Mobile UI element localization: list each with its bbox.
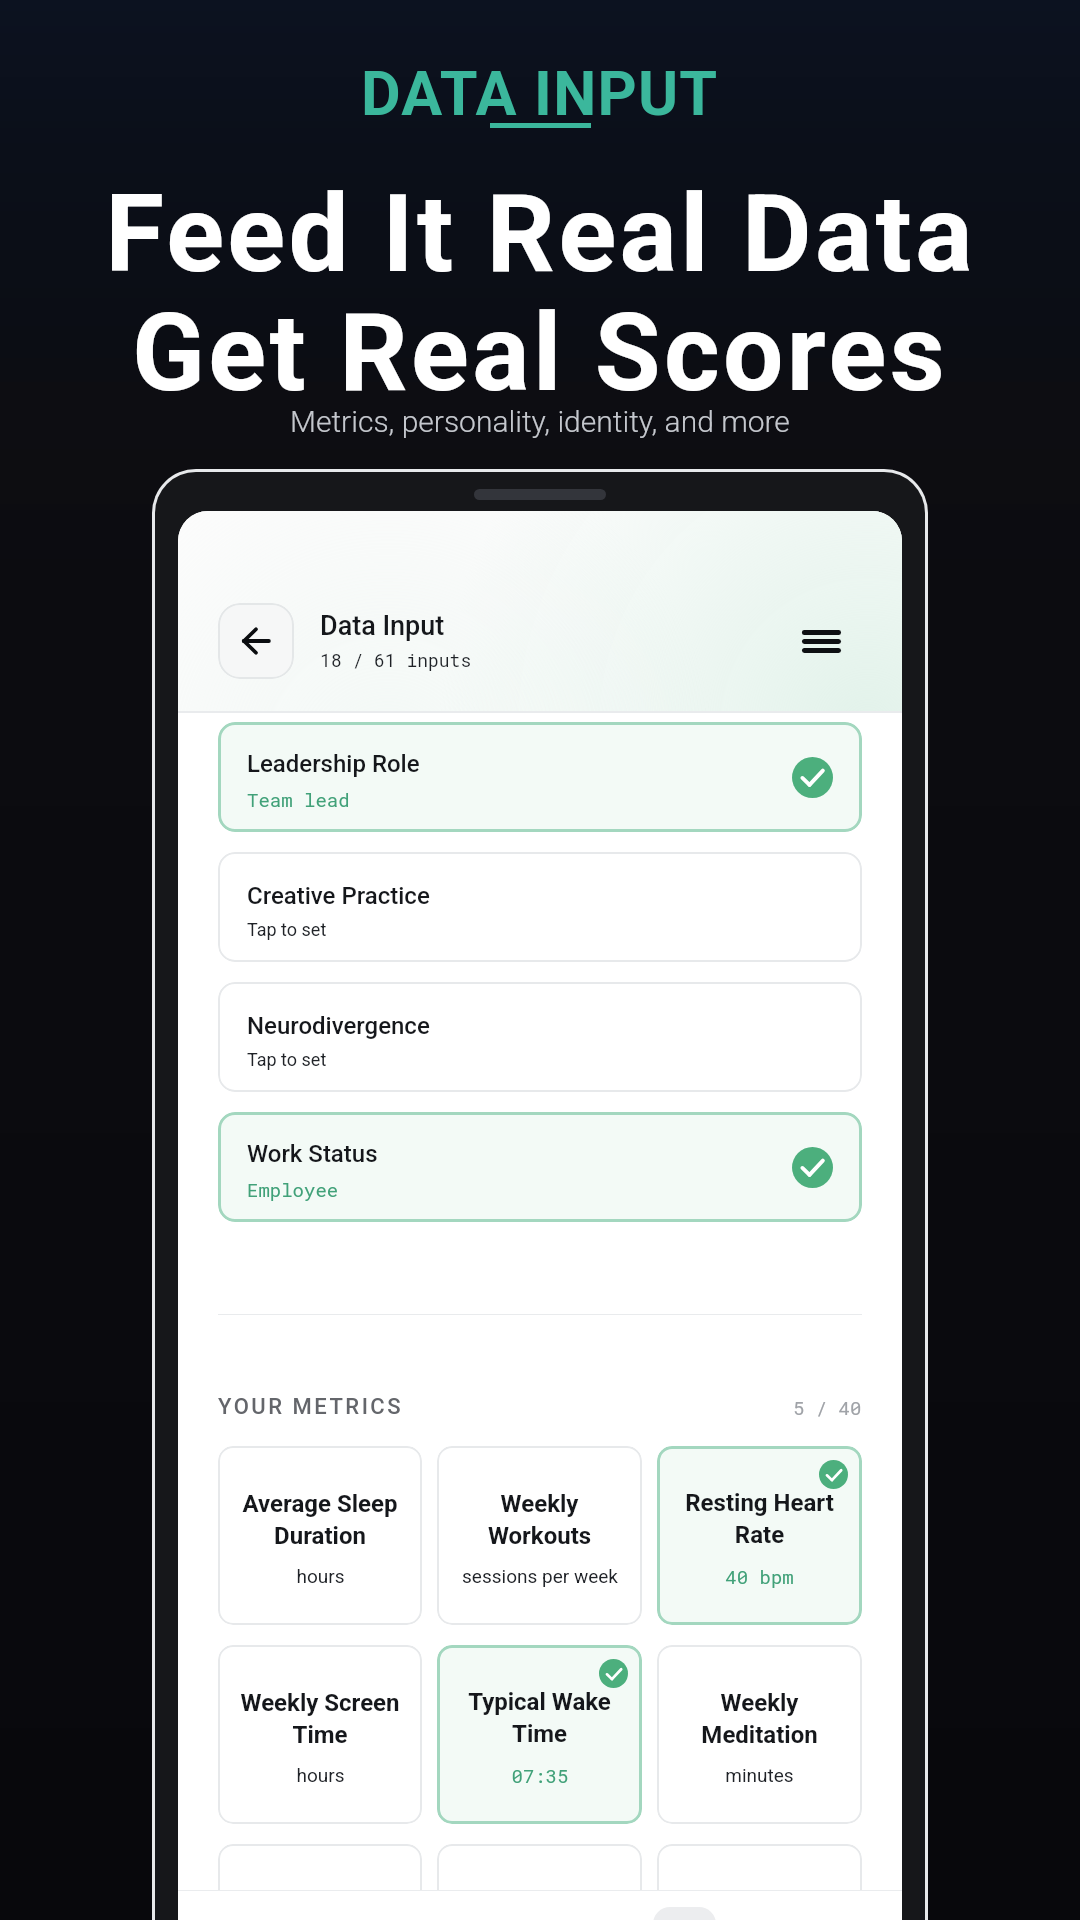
button[interactable]: Profile: [612, 1891, 757, 1920]
button[interactable]: [657, 1844, 862, 1920]
button[interactable]: Back: [218, 603, 294, 679]
staticText: YOUR METRICS: [218, 1394, 404, 1420]
staticText: Feed It Real Data: [105, 172, 976, 297]
staticText: Data Input: [320, 610, 445, 642]
button[interactable]: Menu: [790, 610, 852, 672]
staticText: Weekly Meditation: [673, 1689, 846, 1748]
staticText: Metrics, personality, identity, and more: [290, 404, 790, 439]
staticText: minutes: [725, 1764, 794, 1786]
button[interactable]: Typical Wake Time: [437, 1645, 642, 1824]
staticText: Team lead: [247, 787, 350, 812]
button[interactable]: Average Sleep Duration: [218, 1446, 422, 1625]
staticText: Weekly Screen Time: [234, 1689, 406, 1748]
button[interactable]: Weekly Workouts: [437, 1446, 642, 1625]
staticText: Neurodivergence: [247, 1012, 430, 1040]
button[interactable]: [437, 1844, 642, 1920]
staticText: Typical Wake Time: [453, 1688, 626, 1747]
staticText: Average Sleep Duration: [234, 1490, 406, 1549]
staticText: Tap to set: [247, 1049, 327, 1070]
button[interactable]: Weekly Screen Time: [218, 1645, 422, 1824]
staticText: 18 / 61 inputs: [320, 648, 472, 672]
button[interactable]: Leadership Role: [218, 722, 862, 832]
button[interactable]: Work Status: [218, 1112, 862, 1222]
button[interactable]: Creative Practice: [218, 852, 862, 962]
staticText: Get Real Scores: [132, 291, 948, 416]
staticText: Tap to set: [247, 919, 327, 940]
staticText: hours: [296, 1764, 345, 1786]
button[interactable]: [218, 1844, 422, 1920]
staticText: Weekly Workouts: [453, 1490, 626, 1549]
staticText: 5 / 40: [793, 1395, 862, 1420]
button[interactable]: Neurodivergence: [218, 982, 862, 1092]
staticText: 40 bpm: [725, 1564, 794, 1589]
staticText: Work Status: [247, 1140, 378, 1168]
staticText: hours: [296, 1565, 345, 1587]
button[interactable]: Resting Heart Rate: [657, 1446, 862, 1625]
staticText: Resting Heart Rate: [673, 1489, 846, 1548]
staticText: Employee: [247, 1177, 339, 1202]
staticText: sessions per week: [462, 1565, 618, 1587]
button[interactable]: Weekly Meditation: [657, 1645, 862, 1824]
staticText: DATA INPUT: [361, 58, 719, 129]
staticText: Creative Practice: [247, 882, 430, 910]
staticText: Leadership Role: [247, 750, 420, 778]
staticText: 07:35: [511, 1763, 569, 1788]
